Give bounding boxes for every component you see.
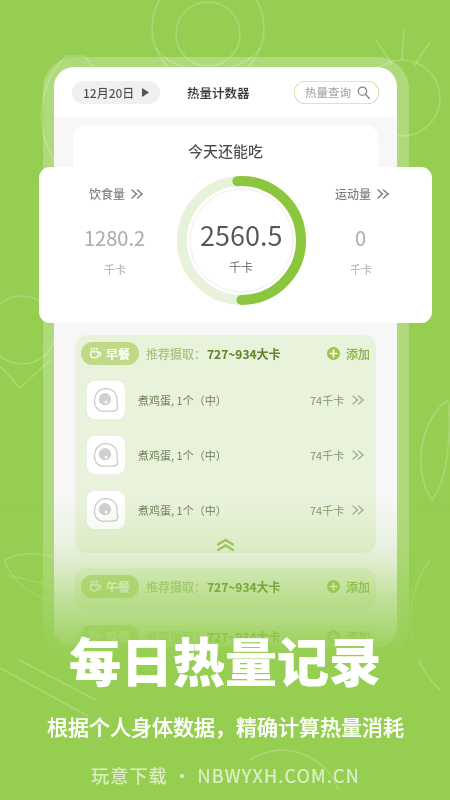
button[interactable]: 添加 [327, 628, 371, 645]
staticText: 煮鸡蛋, 1个（中） [138, 502, 227, 518]
staticText: 推荐摄取： [146, 578, 207, 595]
staticText: 添加 [346, 345, 371, 362]
staticText: 煮鸡蛋, 1个（中） [138, 447, 227, 463]
staticText: 727~934大卡 [207, 628, 281, 645]
staticText: 添加 [346, 578, 371, 595]
button[interactable]: 午餐 [81, 575, 139, 598]
button[interactable]: 煮鸡蛋, 1个（中） [75, 482, 376, 537]
staticText: 热量查询 [305, 84, 351, 101]
staticText: 根据个人身体数据，精确计算热量消耗 [47, 711, 404, 741]
staticText: 1280.2 [84, 223, 146, 252]
button[interactable]: 热量查询 [294, 81, 379, 104]
staticText: 74千卡 [310, 502, 345, 518]
staticText: 74千卡 [310, 447, 345, 463]
staticText: 早餐 [106, 345, 131, 362]
button[interactable]: 早餐 [81, 342, 139, 365]
staticText: 热量计数器 [187, 83, 250, 101]
staticText: 727~934大卡 [207, 578, 281, 595]
staticText: 727~934大卡 [207, 345, 281, 362]
staticText: 千卡 [104, 261, 126, 277]
staticText: 74千卡 [310, 392, 345, 408]
button[interactable]: 添加 [327, 345, 371, 362]
staticText: 运动量 [335, 185, 372, 202]
button[interactable]: 添加 [327, 578, 371, 595]
staticText: 煮鸡蛋, 1个（中） [138, 392, 227, 408]
staticText: 0 [355, 223, 367, 252]
button[interactable]: 晚餐 [81, 625, 139, 647]
staticText: 玩意下载 • NBWYXH.COM.CN [91, 762, 360, 788]
staticText: 添加 [346, 628, 371, 645]
button[interactable]: 运动量 [335, 185, 388, 202]
staticText: 推荐摄取： [146, 345, 207, 362]
staticText: 午餐 [106, 578, 131, 595]
button[interactable]: Collapse [75, 537, 376, 553]
staticText: 饮食量 [89, 185, 126, 202]
button[interactable]: 煮鸡蛋, 1个（中） [75, 372, 376, 427]
staticText: 千卡 [229, 258, 254, 275]
button[interactable]: 饮食量 [89, 185, 142, 202]
button[interactable]: 12月20日 [72, 81, 160, 104]
staticText: 今天还能吃 [188, 140, 264, 162]
staticText: 12月20日 [83, 84, 135, 101]
staticText: 晚餐 [106, 628, 131, 644]
staticText: 每日热量记录 [69, 622, 382, 697]
staticText: 推荐摄取： [146, 628, 207, 645]
staticText: 千卡 [350, 261, 372, 277]
button[interactable]: 煮鸡蛋, 1个（中） [75, 427, 376, 482]
staticText: 2560.5 [200, 215, 283, 254]
